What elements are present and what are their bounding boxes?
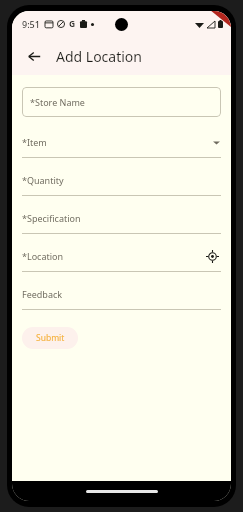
button[interactable]: Submit [22, 327, 78, 349]
button[interactable]: *Quantity [22, 165, 221, 203]
button[interactable]: Back [18, 40, 50, 72]
staticText: *Store Name [30, 96, 85, 108]
button[interactable]: *Item [22, 127, 221, 165]
button[interactable]: *Store Name [22, 87, 221, 117]
staticText: *Item [22, 136, 47, 148]
button[interactable]: *Location [22, 241, 221, 279]
staticText: Submit [36, 332, 65, 344]
button[interactable]: Feedback [22, 279, 221, 317]
staticText: Feedback [22, 288, 63, 300]
staticText: *Specification [22, 212, 81, 224]
staticText: 9:51 [22, 18, 40, 30]
staticText: *Location [22, 250, 64, 262]
staticText: G [69, 18, 76, 30]
button[interactable]: Use current location [203, 247, 221, 265]
staticText: *Quantity [22, 174, 64, 186]
staticText: Add Location [56, 47, 142, 66]
button[interactable]: *Specification [22, 203, 221, 241]
